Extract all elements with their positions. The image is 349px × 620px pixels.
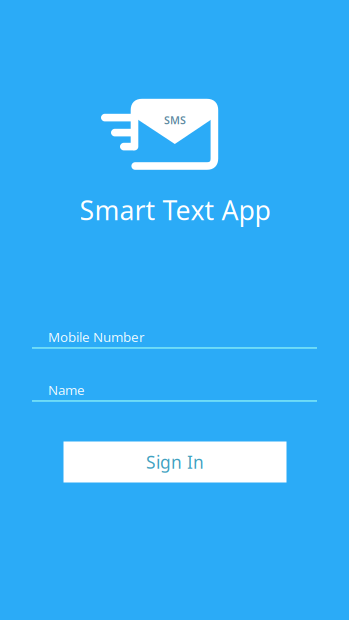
staticText: Smart Text App xyxy=(79,192,270,228)
staticText: SMS xyxy=(164,113,186,127)
button[interactable]: Mobile Number xyxy=(32,319,317,353)
staticText: Sign In xyxy=(146,450,204,473)
staticText: Name xyxy=(48,381,85,399)
button[interactable]: Sign In xyxy=(63,441,286,482)
button[interactable]: Name xyxy=(32,372,317,406)
staticText: Mobile Number xyxy=(48,328,145,346)
